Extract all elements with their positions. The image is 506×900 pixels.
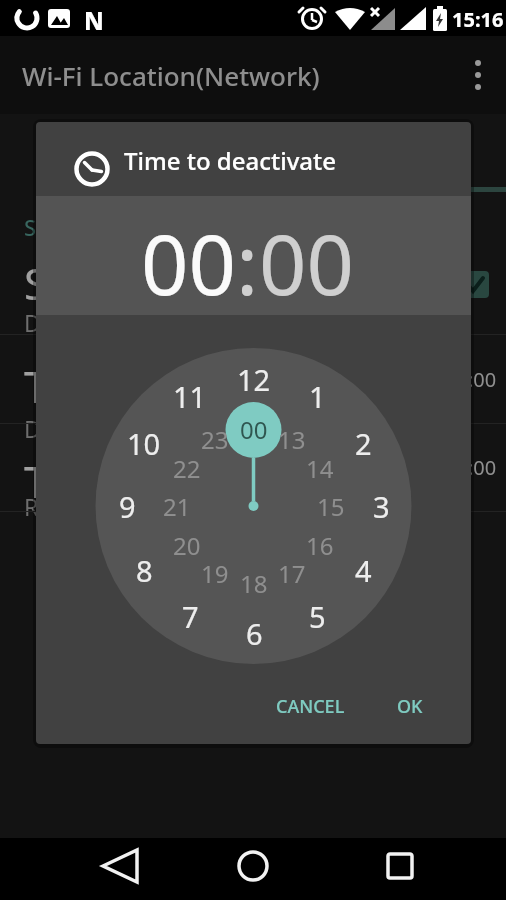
- staticText: 13: [278, 423, 306, 456]
- button[interactable]: CANCEL: [262, 688, 358, 724]
- button[interactable]: [375, 848, 425, 892]
- staticText: 21: [163, 490, 191, 523]
- staticText: 14: [306, 452, 334, 485]
- staticText: 4: [355, 551, 372, 590]
- staticText: Time to activate: [24, 357, 345, 416]
- staticText: Time to deactivate: [24, 452, 396, 511]
- staticText: 22:00: [445, 366, 497, 393]
- staticText: 9: [119, 487, 136, 526]
- button[interactable]: OK: [380, 688, 440, 724]
- staticText: 6: [246, 614, 263, 653]
- staticText: 00: [141, 206, 236, 319]
- staticText: 15:16: [452, 6, 504, 33]
- button[interactable]: Time to deactivate: [0, 424, 506, 511]
- staticText: 00: [259, 206, 354, 319]
- staticText: Daily activation time: [24, 413, 244, 444]
- staticText: 22: [173, 452, 201, 485]
- staticText: 16: [306, 529, 334, 562]
- button[interactable]: Time to activate: [0, 335, 506, 423]
- staticText: N: [84, 4, 104, 37]
- staticText: 3: [373, 487, 390, 526]
- button[interactable]: [95, 848, 145, 892]
- staticText: 11: [173, 377, 207, 416]
- staticText: 2: [355, 424, 372, 463]
- button[interactable]: [228, 848, 278, 892]
- staticText: 17: [278, 557, 306, 590]
- staticText: 00: [240, 413, 268, 446]
- staticText: Scheduled: [24, 254, 234, 313]
- staticText: :: [236, 206, 259, 319]
- staticText: 1: [309, 377, 326, 416]
- staticText: 15: [317, 490, 345, 523]
- staticText: Deactivate Wi-Fi on schedule: [24, 307, 333, 338]
- staticText: Wi-Fi Location(Network): [22, 58, 320, 93]
- button[interactable]: Scheduled: [0, 240, 506, 334]
- staticText: 10: [127, 424, 161, 463]
- staticText: Schedule: [24, 212, 120, 242]
- staticText: 5: [309, 597, 326, 636]
- button[interactable]: [468, 36, 488, 114]
- staticText: 19: [201, 557, 229, 590]
- staticText: 8: [136, 551, 153, 590]
- staticText: 20: [173, 529, 201, 562]
- staticText: Repeats daily: [24, 491, 168, 522]
- staticText: 7: [182, 597, 199, 636]
- staticText: Time to deactivate: [124, 144, 336, 177]
- button[interactable]: [462, 271, 489, 298]
- staticText: 23: [201, 423, 229, 456]
- staticText: 12: [237, 360, 271, 399]
- staticText: 23:00: [445, 454, 497, 481]
- staticText: 18: [240, 567, 268, 600]
- staticText: OK: [397, 694, 423, 719]
- staticText: CANCEL: [276, 694, 345, 719]
